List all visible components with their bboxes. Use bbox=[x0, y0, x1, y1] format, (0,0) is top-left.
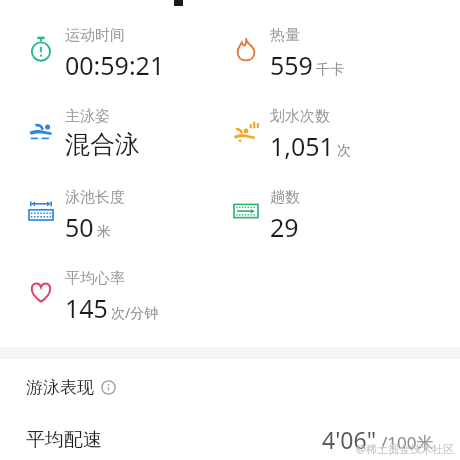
staticText: 运动时间 bbox=[65, 26, 125, 45]
staticText: 29 bbox=[270, 210, 299, 244]
staticText: 千卡 bbox=[316, 61, 344, 79]
button[interactable]: 游泳表现 bbox=[0, 373, 460, 402]
staticText: 混合泳 bbox=[65, 129, 140, 160]
other: Info bbox=[101, 380, 116, 395]
other: Duration bbox=[26, 34, 56, 64]
staticText: 次 bbox=[337, 142, 351, 160]
staticText: 泳池长度 bbox=[65, 188, 125, 207]
staticText: 559 bbox=[270, 48, 313, 82]
staticText: 热量 bbox=[270, 26, 300, 45]
other: Laps bbox=[231, 196, 261, 226]
button[interactable]: 平均配速 bbox=[0, 424, 460, 455]
staticText: 趟数 bbox=[270, 188, 300, 207]
staticText: 次/分钟 bbox=[111, 303, 159, 322]
staticText: /100米 bbox=[381, 431, 434, 454]
staticText: 50 bbox=[65, 210, 94, 244]
other: Calories bbox=[231, 34, 261, 64]
other: Swim style bbox=[26, 115, 56, 145]
other: Average heart rate bbox=[26, 277, 56, 307]
staticText: 1,051 bbox=[270, 129, 334, 163]
button[interactable]: Swim style bbox=[0, 107, 230, 160]
staticText: 145 bbox=[65, 291, 108, 325]
staticText: 主泳姿 bbox=[65, 107, 110, 126]
button[interactable]: Laps bbox=[230, 188, 460, 244]
button[interactable]: Average heart rate bbox=[0, 269, 230, 325]
other: Pool length bbox=[26, 196, 56, 226]
staticText: 00:59:21 bbox=[65, 48, 165, 82]
staticText: 平均心率 bbox=[65, 269, 125, 288]
button[interactable]: Calories bbox=[230, 26, 460, 82]
staticText: 平均配速 bbox=[26, 428, 102, 452]
button[interactable]: Pool length bbox=[0, 188, 230, 244]
button[interactable]: Duration bbox=[0, 26, 230, 82]
staticText: 米 bbox=[97, 223, 111, 241]
other: Stroke count bbox=[231, 115, 261, 145]
staticText: 4'06" bbox=[322, 424, 377, 455]
staticText: 划水次数 bbox=[270, 107, 330, 126]
button[interactable]: Stroke count bbox=[230, 107, 460, 163]
staticText: 游泳表现 bbox=[26, 377, 94, 398]
staticText: @稀土掘金技术社区 bbox=[356, 441, 454, 456]
